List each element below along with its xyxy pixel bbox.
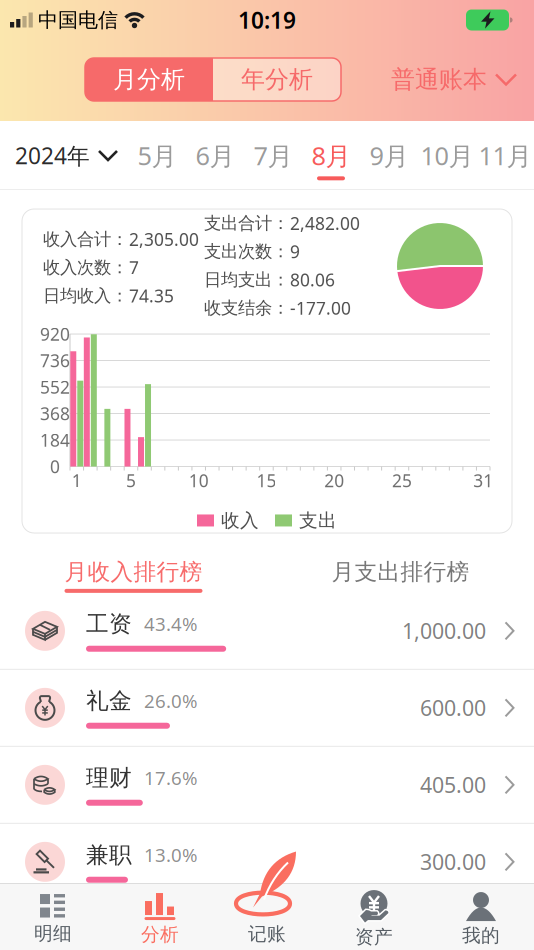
staticText: 年分析 — [241, 65, 313, 94]
staticText: 7 — [129, 256, 139, 279]
staticText: 920 — [40, 322, 70, 345]
button[interactable]: 10月 — [418, 131, 476, 180]
staticText: 80.06 — [290, 268, 335, 291]
staticText: 10:19 — [238, 5, 296, 35]
staticText: 普通账本 — [391, 65, 487, 94]
button[interactable]: 兼职 — [0, 824, 534, 900]
staticText: 26.0% — [144, 688, 198, 713]
staticText: 月分析 — [113, 65, 185, 94]
staticText: 6月 — [195, 139, 234, 172]
staticText: 中国电信 — [38, 8, 118, 32]
staticText: 368 — [40, 402, 70, 425]
staticText: 43.4% — [144, 611, 198, 636]
button[interactable]: 6月 — [186, 131, 244, 180]
staticText: 74.35 — [129, 284, 174, 307]
staticText: 2,482.00 — [290, 212, 360, 235]
button[interactable]: 理财 — [0, 747, 534, 823]
staticText: 月支出排行榜 — [331, 558, 469, 586]
staticText: 20 — [324, 469, 344, 492]
staticText: 184 — [40, 428, 70, 451]
staticText: 收入合计： — [43, 228, 128, 250]
staticText: 0 — [50, 455, 60, 478]
staticText: 15 — [256, 469, 276, 492]
button[interactable]: 7月 — [244, 131, 302, 180]
staticText: 2,305.00 — [129, 228, 199, 251]
staticText: 9月 — [369, 139, 408, 172]
button[interactable]: 5月 — [128, 131, 186, 180]
staticText: 1,000.00 — [402, 617, 486, 645]
staticText: 理财 — [86, 764, 132, 792]
button[interactable]: 年分析 — [213, 58, 341, 101]
button[interactable]: 明细 — [0, 894, 106, 945]
staticText: 日均支出： — [204, 269, 289, 290]
button[interactable]: 礼金 — [0, 670, 534, 746]
button[interactable]: 月支出排行榜 — [331, 558, 469, 593]
staticText: 10月 — [420, 139, 473, 172]
staticText: 明细 — [34, 922, 72, 945]
staticText: 月收入排行榜 — [64, 558, 202, 586]
button[interactable]: 资产 — [320, 890, 427, 948]
staticText: 分析 — [141, 923, 179, 946]
button[interactable]: 我的 — [427, 892, 534, 947]
staticText: 11月 — [478, 139, 531, 172]
button[interactable]: 切换账本 — [391, 65, 534, 94]
staticText: 我的 — [462, 924, 500, 947]
staticText: 资产 — [355, 925, 393, 948]
staticText: 5 — [126, 469, 136, 492]
staticText: 8月 — [311, 139, 350, 172]
staticText: 2024年 — [15, 140, 90, 170]
button[interactable]: 记账 — [213, 893, 320, 945]
staticText: 收入次数： — [43, 257, 128, 278]
staticText: 736 — [40, 349, 70, 372]
staticText: 552 — [40, 375, 70, 398]
button[interactable]: 9月 — [360, 131, 418, 180]
staticText: 5月 — [137, 139, 176, 172]
staticText: 日均收入： — [43, 285, 128, 306]
staticText: 兼职 — [86, 841, 132, 869]
button[interactable]: 分析 — [106, 893, 213, 946]
staticText: 405.00 — [420, 771, 486, 799]
staticText: 31 — [473, 469, 493, 492]
staticText: 工资 — [86, 610, 132, 638]
staticText: -177.00 — [290, 296, 351, 319]
staticText: 7月 — [253, 139, 292, 172]
staticText: 礼金 — [86, 687, 132, 715]
staticText: 收入 — [221, 509, 259, 532]
staticText: 支出合计： — [204, 212, 289, 234]
staticText: 17.6% — [144, 765, 198, 790]
staticText: 收支结余： — [204, 297, 289, 319]
button[interactable]: 月分析 — [85, 58, 213, 101]
staticText: 600.00 — [420, 694, 486, 722]
staticText: 支出次数： — [204, 241, 289, 262]
staticText: 25 — [392, 469, 412, 492]
staticText: 9 — [290, 240, 300, 263]
button[interactable]: 11月 — [476, 131, 534, 180]
staticText: 记账 — [248, 922, 286, 945]
staticText: 300.00 — [420, 848, 486, 876]
staticText: 13.0% — [144, 842, 198, 867]
button[interactable]: 选择年份 — [0, 140, 118, 170]
staticText: 支出 — [299, 509, 337, 532]
button[interactable]: 月收入排行榜 — [64, 558, 202, 593]
button[interactable]: 8月 — [302, 131, 360, 180]
button[interactable]: 工资 — [0, 593, 534, 669]
staticText: 1 — [72, 469, 82, 492]
staticText: 10 — [189, 469, 209, 492]
